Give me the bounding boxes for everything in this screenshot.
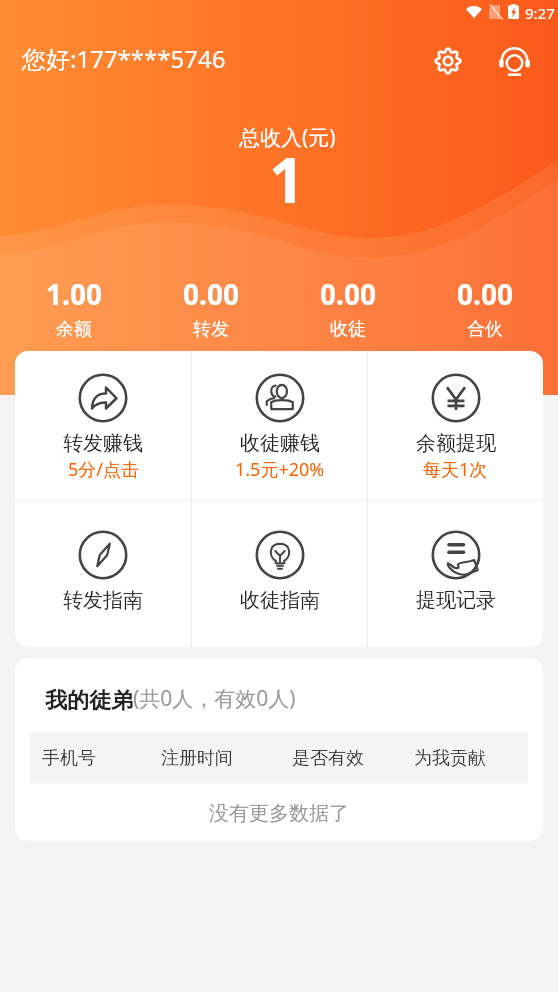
staticText: 为我贡献 — [414, 747, 486, 770]
button[interactable]: 0.00 — [416, 275, 553, 341]
staticText: 合伙 — [467, 318, 503, 341]
button[interactable]: 0.00 — [142, 275, 279, 341]
button[interactable]: 提现记录 — [368, 501, 543, 647]
staticText: 总收入(元) — [239, 123, 336, 152]
staticText: 转发指南 — [63, 588, 143, 613]
button[interactable]: Settings — [425, 38, 471, 84]
staticText: 没有更多数据了 — [15, 801, 543, 826]
staticText: 余额提现 — [416, 431, 496, 456]
button[interactable]: Customer service — [491, 38, 537, 84]
staticText: 1.5元+20% — [235, 457, 325, 482]
staticText: 9:27 — [525, 3, 555, 23]
staticText: 手机号 — [42, 747, 96, 770]
staticText: 提现记录 — [416, 588, 496, 613]
staticText: 余额 — [56, 318, 92, 341]
staticText: 收徒 — [330, 318, 366, 341]
staticText: 1 — [269, 137, 305, 221]
staticText: 注册时间 — [161, 747, 233, 770]
button[interactable]: 转发赚钱 — [15, 351, 191, 500]
button[interactable]: 转发指南 — [15, 501, 191, 647]
staticText: 我的徒弟 — [45, 687, 133, 715]
staticText: 0.00 — [457, 275, 513, 313]
staticText: 转发赚钱 — [63, 431, 143, 456]
staticText: 收徒指南 — [240, 588, 320, 613]
button[interactable]: 余额提现 — [368, 351, 543, 500]
button[interactable]: 0.00 — [279, 275, 416, 341]
button[interactable]: 收徒指南 — [192, 501, 367, 647]
staticText: 5分/点击 — [68, 457, 139, 482]
staticText: 收徒赚钱 — [240, 431, 320, 456]
staticText: (共0人，有效0人) — [133, 684, 296, 713]
staticText: 0.00 — [320, 275, 376, 313]
staticText: 您好:177****5746 — [22, 42, 226, 75]
staticText: 1.00 — [46, 275, 102, 313]
staticText: 是否有效 — [292, 747, 364, 770]
staticText: 转发 — [193, 318, 229, 341]
staticText: 每天1次 — [423, 457, 488, 482]
staticText: 0.00 — [183, 275, 239, 313]
button[interactable]: 1.00 — [5, 275, 142, 341]
button[interactable]: 收徒赚钱 — [192, 351, 367, 500]
